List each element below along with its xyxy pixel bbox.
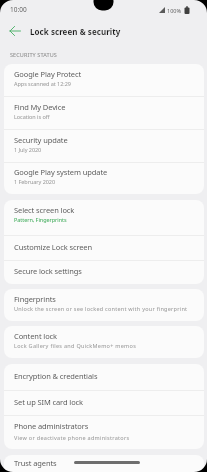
staticText: Apps scanned at 12:29: [14, 80, 71, 87]
staticText: Trust agents: [14, 458, 57, 468]
staticText: View or deactivate phone administrators: [14, 434, 130, 441]
button[interactable]: Secure lock settings: [4, 261, 204, 284]
staticText: Set up SIM card lock: [14, 397, 84, 407]
staticText: Secure lock settings: [14, 266, 82, 276]
staticText: Location is off: [14, 113, 50, 120]
staticText: Phone administrators: [14, 421, 89, 431]
button[interactable]: Set up SIM card lock: [4, 391, 204, 415]
staticText: Pattern, Fingerprints: [14, 216, 67, 223]
button[interactable]: Google Play Protect: [4, 64, 204, 96]
staticText: Fingerprints: [14, 294, 56, 304]
staticText: Google Play system update: [14, 167, 108, 177]
staticText: Lock Gallery files and QuickMemo+ memos: [14, 342, 137, 349]
button[interactable]: Select screen lock: [4, 200, 204, 235]
staticText: Google Play Protect: [14, 69, 82, 79]
button[interactable]: Encryption & credentials: [4, 364, 204, 390]
staticText: Find My Device: [14, 102, 66, 112]
staticText: Content lock: [14, 331, 58, 341]
button[interactable]: Fingerprints: [4, 289, 204, 321]
staticText: Unlock the screen or see locked content …: [14, 305, 188, 312]
button[interactable]: Google Play system update: [4, 163, 204, 194]
button[interactable]: Customize Lock screen: [4, 236, 204, 260]
button[interactable]: Trust agents: [4, 455, 204, 472]
staticText: 100%: [167, 7, 182, 14]
staticText: Customize Lock screen: [14, 242, 93, 252]
button[interactable]: Content lock: [4, 326, 204, 358]
staticText: 1 July 2020: [14, 146, 42, 153]
staticText: 10:00: [10, 5, 27, 14]
staticText: SECURITY STATUS: [10, 51, 57, 58]
staticText: Security update: [14, 135, 68, 145]
staticText: Select screen lock: [14, 205, 75, 215]
staticText: Encryption & credentials: [14, 371, 98, 381]
staticText: 1 February 2020: [14, 178, 56, 185]
button[interactable]: Find My Device: [4, 97, 204, 129]
button[interactable]: Phone administrators: [4, 416, 204, 449]
staticText: Lock screen & security: [30, 26, 121, 37]
button[interactable]: Security update: [4, 130, 204, 162]
button[interactable]: [5, 21, 25, 41]
